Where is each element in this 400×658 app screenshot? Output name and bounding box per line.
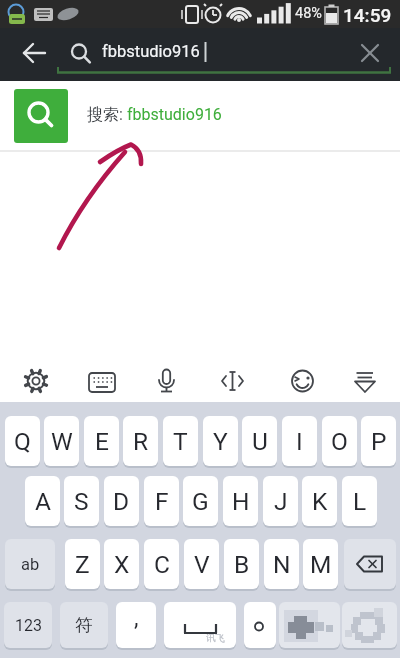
button[interactable]: A	[25, 476, 60, 526]
staticText: ,	[134, 605, 139, 632]
button[interactable]	[341, 357, 389, 403]
button[interactable]: F	[144, 476, 179, 526]
staticText: fbbstudio916	[127, 105, 222, 124]
button[interactable]: V	[184, 539, 219, 589]
staticText: S	[74, 487, 89, 516]
button[interactable]	[14, 89, 68, 143]
button[interactable]: ab	[5, 539, 55, 589]
staticText: 48%	[295, 5, 322, 22]
button[interactable]: W	[44, 416, 79, 466]
button[interactable]: I	[282, 416, 317, 466]
button[interactable]	[12, 357, 60, 403]
button[interactable]	[164, 602, 236, 648]
staticText: V	[194, 550, 210, 579]
button[interactable]: K	[302, 476, 337, 526]
button[interactable]: E	[84, 416, 119, 466]
staticText: Z	[75, 550, 90, 579]
button[interactable]: N	[264, 539, 299, 589]
staticText: C	[154, 550, 170, 579]
button[interactable]	[78, 357, 126, 403]
staticText: I	[296, 427, 303, 456]
button[interactable]: ,	[116, 602, 156, 648]
staticText: Y	[213, 427, 228, 456]
staticText: N	[273, 550, 291, 579]
button[interactable]: Y	[203, 416, 238, 466]
staticText: L	[353, 487, 367, 516]
button[interactable]	[244, 602, 276, 648]
staticText: X	[114, 550, 130, 579]
button[interactable]: D	[104, 476, 139, 526]
button[interactable]	[209, 357, 257, 403]
staticText: 123	[15, 616, 42, 635]
button[interactable]: X	[104, 539, 139, 589]
button[interactable]: B	[224, 539, 259, 589]
button[interactable]	[348, 31, 392, 75]
button[interactable]: S	[64, 476, 99, 526]
staticText: J	[274, 487, 288, 516]
staticText: O	[331, 427, 348, 456]
button[interactable]	[279, 602, 340, 648]
button[interactable]: 符	[60, 602, 108, 648]
button[interactable]: Q	[5, 416, 40, 466]
staticText: P	[371, 427, 387, 456]
staticText: H	[232, 487, 250, 516]
staticText: 讯飞	[206, 632, 225, 644]
button[interactable]: M	[303, 539, 338, 589]
staticText: M	[310, 550, 332, 579]
button[interactable]: U	[242, 416, 277, 466]
button[interactable]: 123	[4, 602, 52, 648]
button[interactable]: T	[163, 416, 198, 466]
button[interactable]: G	[183, 476, 218, 526]
staticText: U	[252, 427, 268, 456]
staticText: F	[155, 487, 169, 516]
staticText: G	[192, 487, 209, 516]
staticText: B	[234, 550, 250, 579]
button[interactable]	[279, 357, 327, 403]
staticText: R	[133, 427, 149, 456]
button[interactable]: J	[263, 476, 298, 526]
staticText: fbbstudio916	[102, 42, 200, 61]
staticText: W	[51, 427, 73, 456]
staticText: D	[113, 487, 130, 516]
staticText: 符	[75, 614, 93, 636]
staticText: 搜索:	[87, 105, 127, 125]
staticText: 14:59	[343, 4, 392, 26]
staticText: T	[173, 427, 188, 456]
button[interactable]: Z	[65, 539, 100, 589]
button[interactable]	[342, 602, 397, 648]
button[interactable]: R	[123, 416, 158, 466]
staticText: K	[312, 487, 328, 516]
staticText: E	[95, 427, 109, 456]
button[interactable]: P	[361, 416, 396, 466]
button[interactable]: H	[223, 476, 258, 526]
staticText: A	[35, 487, 51, 516]
button[interactable]	[143, 357, 191, 403]
button[interactable]: O	[322, 416, 357, 466]
button[interactable]	[344, 539, 396, 589]
button[interactable]: L	[342, 476, 377, 526]
button[interactable]: C	[144, 539, 179, 589]
staticText: Q	[14, 427, 31, 456]
button[interactable]	[0, 81, 400, 151]
button[interactable]	[10, 31, 54, 75]
staticText: ab	[21, 555, 40, 574]
